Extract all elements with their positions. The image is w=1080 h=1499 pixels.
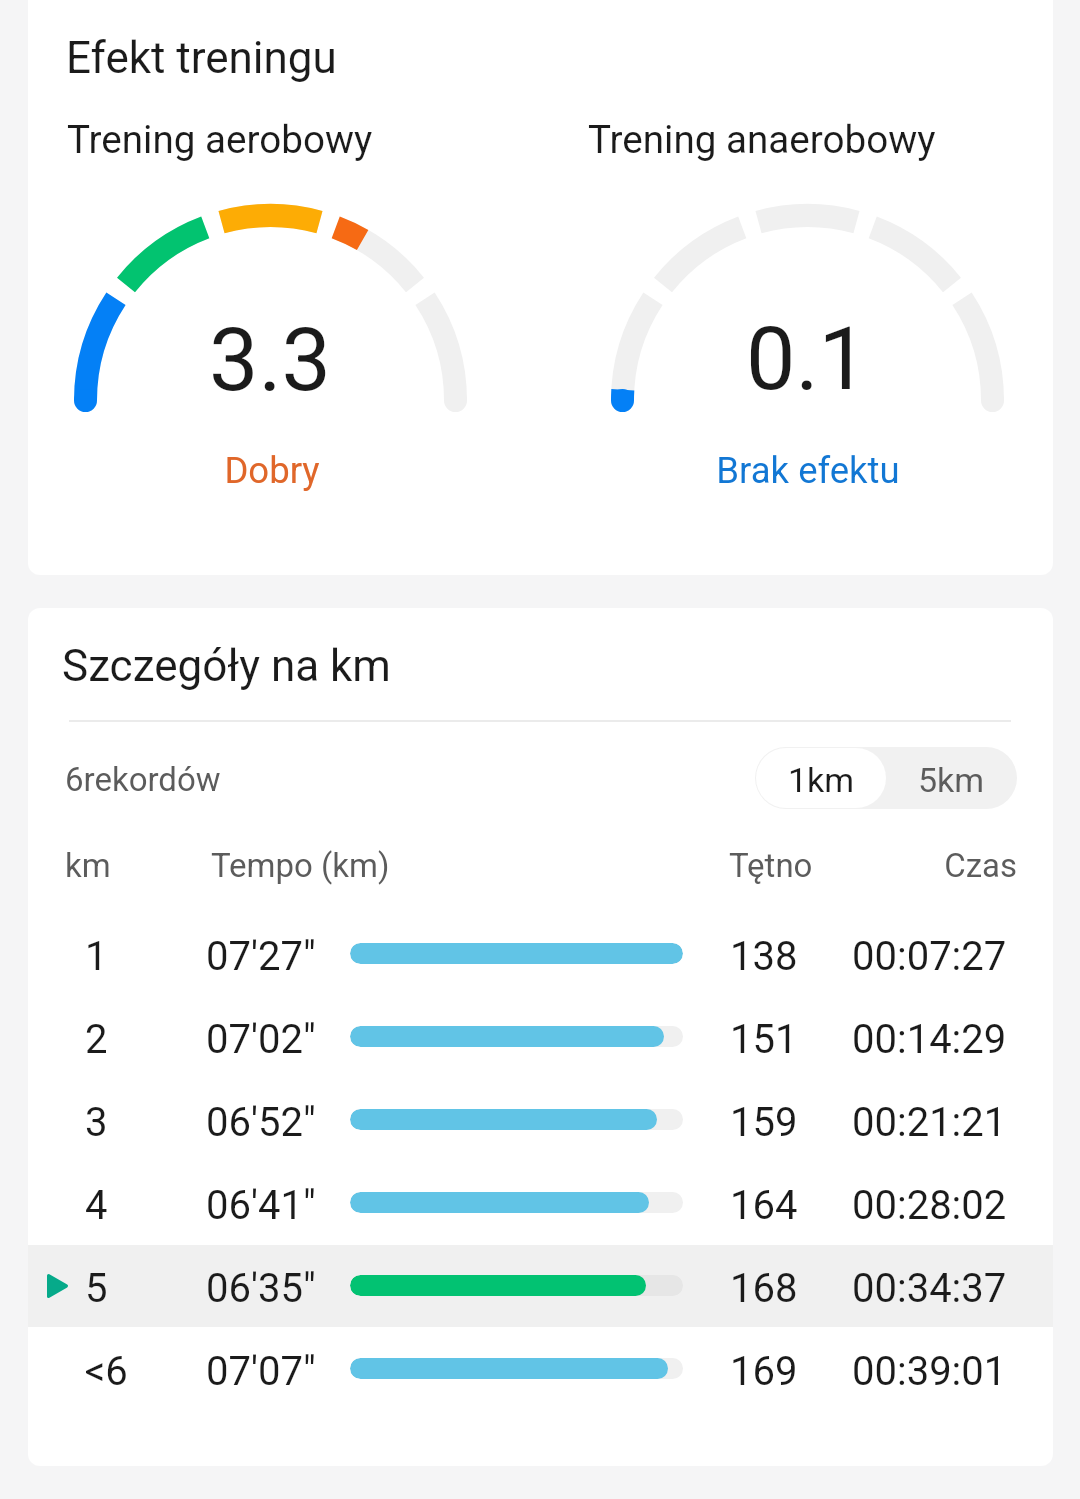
staticText: km — [65, 846, 111, 885]
staticText: Dobry — [0, 449, 572, 492]
button[interactable] — [28, 1328, 1053, 1410]
staticText: 4 — [85, 1182, 108, 1229]
staticText: Trening aerobowy — [67, 117, 373, 162]
button[interactable] — [28, 996, 1053, 1078]
staticText: 06'35" — [206, 1265, 316, 1312]
staticText: 0.1 — [507, 307, 1080, 410]
staticText: 151 — [730, 1016, 798, 1063]
staticText: 5km — [918, 760, 985, 800]
button[interactable] — [28, 913, 1053, 995]
staticText: 159 — [730, 1099, 798, 1146]
staticText: 00:14:29 — [852, 1016, 1007, 1063]
staticText: 2 — [85, 1016, 108, 1063]
staticText: Trening anaerobowy — [588, 117, 936, 162]
staticText: <6 — [85, 1348, 128, 1395]
staticText: 07'02" — [206, 1016, 316, 1063]
staticText: 6rekordów — [65, 760, 221, 799]
staticText: Szczegóły na km — [62, 640, 391, 692]
staticText: 07'27" — [206, 933, 316, 980]
staticText: 06'52" — [206, 1099, 316, 1146]
button[interactable]: 5km — [886, 747, 1017, 809]
staticText: 168 — [730, 1265, 798, 1312]
staticText: 06'41" — [206, 1182, 316, 1229]
staticText: 00:39:01 — [852, 1348, 1007, 1395]
button[interactable]: 1km — [756, 748, 886, 808]
staticText: 3 — [85, 1099, 108, 1146]
staticText: 5 — [85, 1265, 108, 1312]
staticText: 169 — [730, 1348, 798, 1395]
staticText: 07'07" — [206, 1348, 316, 1395]
staticText: 00:21:21 — [852, 1099, 1007, 1146]
staticText: 00:07:27 — [852, 933, 1007, 980]
button[interactable] — [28, 1245, 1053, 1327]
button[interactable] — [28, 1162, 1053, 1244]
staticText: Tempo (km) — [211, 846, 390, 885]
staticText: Brak efektu — [508, 449, 1080, 492]
staticText: 00:34:37 — [852, 1265, 1007, 1312]
staticText: Czas — [617, 846, 1017, 885]
staticText: 3.3 — [0, 308, 570, 411]
staticText: Efekt treningu — [66, 32, 337, 84]
staticText: 1km — [788, 760, 855, 800]
other: Selected lap — [47, 1274, 68, 1298]
button[interactable] — [28, 1079, 1053, 1161]
staticText: 164 — [730, 1182, 798, 1229]
staticText: 00:28:02 — [852, 1182, 1007, 1229]
staticText: 1 — [85, 933, 108, 980]
staticText: 138 — [730, 933, 798, 980]
staticText: Tętno — [729, 846, 813, 885]
